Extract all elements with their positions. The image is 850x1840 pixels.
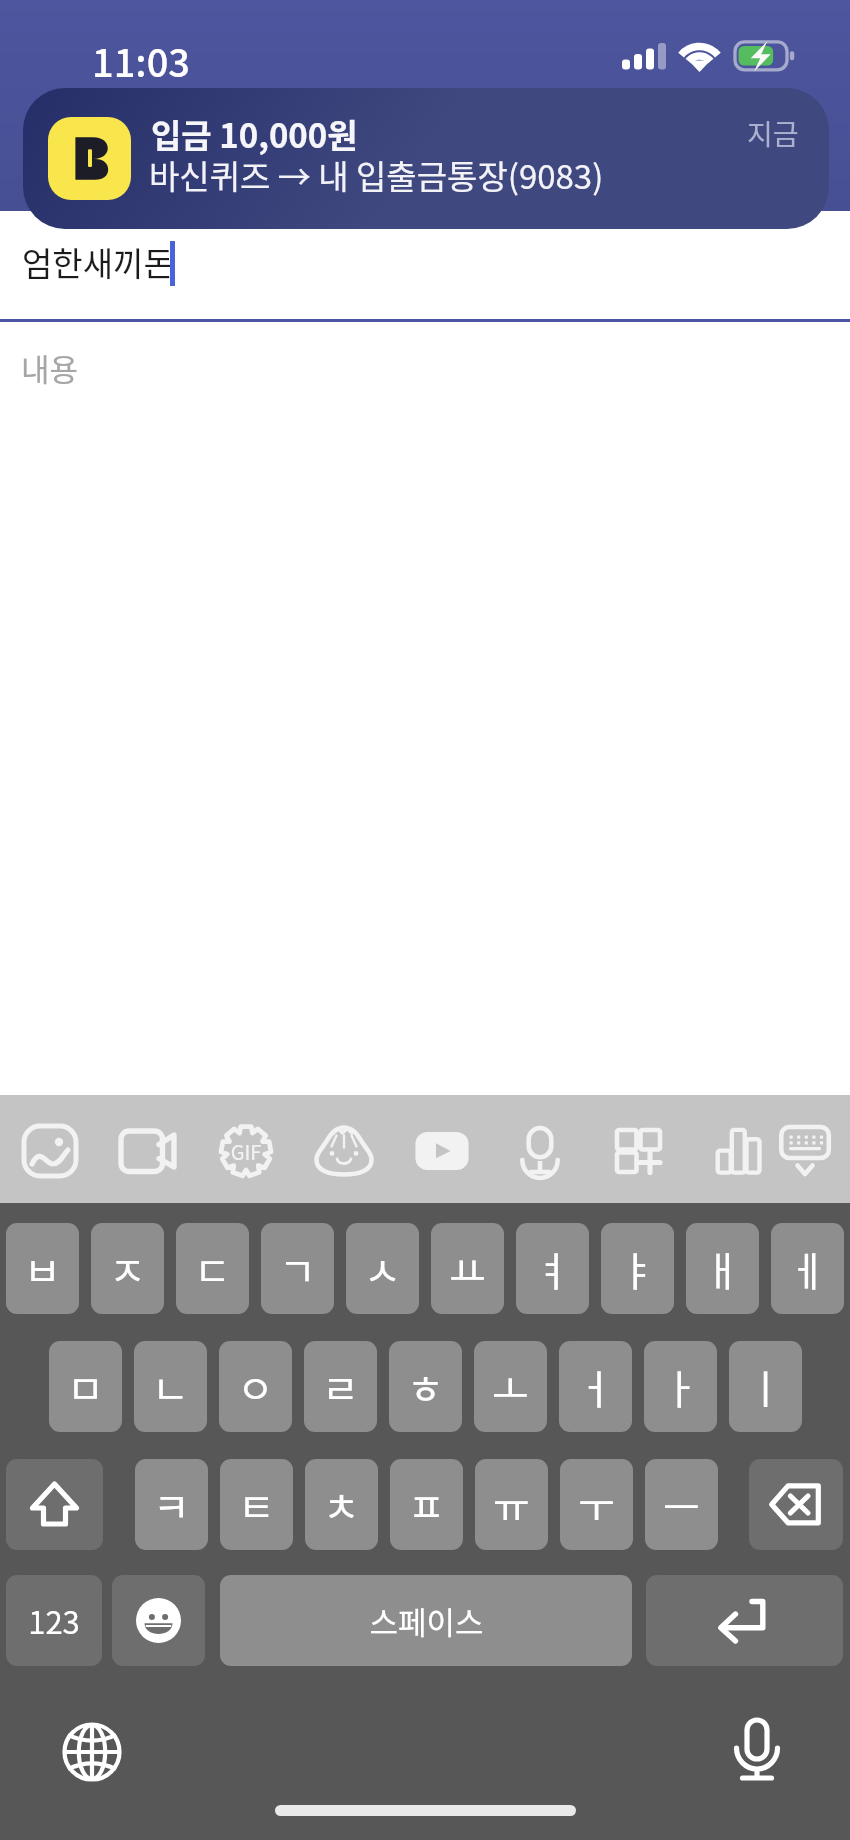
button[interactable]: 입금 10,000원 <box>23 88 829 229</box>
staticText: 지금 <box>747 113 799 154</box>
staticText: ㅑ <box>619 1240 656 1298</box>
button[interactable]: ㅍ <box>390 1459 463 1550</box>
staticText: ㅋ <box>153 1476 190 1534</box>
button[interactable]: Emoji <box>112 1575 205 1666</box>
staticText: GIF <box>221 1137 271 1166</box>
button[interactable]: Return <box>646 1575 843 1666</box>
staticText: 스페이스 <box>369 1598 484 1643</box>
staticText: ㅈ <box>109 1240 146 1298</box>
button[interactable]: Photos <box>8 1109 92 1193</box>
staticText: ㅌ <box>238 1476 275 1534</box>
button[interactable]: Shift <box>6 1459 103 1550</box>
button[interactable]: Apps <box>594 1109 678 1193</box>
button[interactable]: ㅜ <box>560 1459 633 1550</box>
button[interactable]: ㅠ <box>475 1459 548 1550</box>
staticText: 123 <box>28 1598 80 1643</box>
button[interactable]: ㅔ <box>771 1223 844 1314</box>
staticText: ㅛ <box>449 1240 486 1298</box>
button[interactable]: ㅈ <box>91 1223 164 1314</box>
button[interactable]: Voice <box>498 1108 582 1192</box>
button[interactable]: ㅌ <box>220 1459 293 1550</box>
button[interactable]: Hide keyboard <box>763 1100 847 1184</box>
staticText: 11:03 <box>92 33 190 88</box>
staticText: ㅜ <box>578 1476 615 1534</box>
button[interactable]: Poll <box>694 1109 778 1193</box>
button[interactable]: ㅓ <box>559 1341 632 1432</box>
staticText: 입금 10,000원 <box>151 110 358 158</box>
button[interactable]: ㄷ <box>176 1223 249 1314</box>
button[interactable]: ㄴ <box>134 1341 207 1432</box>
staticText: ㅍ <box>408 1476 445 1534</box>
staticText: ㅡ <box>663 1476 700 1534</box>
button[interactable]: ㅇ <box>219 1341 292 1432</box>
staticText: ㅓ <box>577 1358 614 1416</box>
button[interactable]: 엄한새끼돈 <box>22 238 174 286</box>
button[interactable]: ㅑ <box>601 1223 674 1314</box>
staticText: ㅠ <box>493 1476 530 1534</box>
button[interactable]: ㅅ <box>346 1223 419 1314</box>
staticText: ㅂ <box>24 1240 61 1298</box>
button[interactable]: GIF <box>204 1109 288 1193</box>
button[interactable]: ㅗ <box>474 1341 547 1432</box>
button[interactable]: ㄱ <box>261 1223 334 1314</box>
staticText: ㄹ <box>322 1358 359 1416</box>
button[interactable]: Change keyboard <box>57 1717 127 1787</box>
button[interactable]: 123 <box>6 1575 102 1666</box>
button[interactable]: 내용 <box>21 345 79 390</box>
button[interactable]: ㄹ <box>304 1341 377 1432</box>
staticText: ㅐ <box>704 1240 741 1298</box>
staticText: ㅕ <box>534 1240 571 1298</box>
button[interactable]: ㅁ <box>49 1341 122 1432</box>
staticText: ㄴ <box>152 1358 189 1416</box>
button[interactable]: ㅡ <box>645 1459 718 1550</box>
staticText: ㄱ <box>279 1240 316 1298</box>
button[interactable]: ㅕ <box>516 1223 589 1314</box>
button[interactable]: ㅂ <box>6 1223 79 1314</box>
staticText: ㅣ <box>747 1358 784 1416</box>
button[interactable]: ㅐ <box>686 1223 759 1314</box>
button[interactable]: Dictation <box>722 1715 792 1785</box>
staticText: ㅔ <box>789 1240 826 1298</box>
staticText: ㅁ <box>67 1358 104 1416</box>
button[interactable]: YouTube <box>400 1109 484 1193</box>
staticText: ㅊ <box>323 1476 360 1534</box>
button[interactable]: ㅏ <box>644 1341 717 1432</box>
button[interactable]: ㅣ <box>729 1341 802 1432</box>
staticText: ㅎ <box>407 1358 444 1416</box>
staticText: ㅅ <box>364 1240 401 1298</box>
button[interactable]: Stickers <box>302 1109 386 1193</box>
staticText: ㅇ <box>237 1358 274 1416</box>
button[interactable]: ㅎ <box>389 1341 462 1432</box>
button[interactable]: Video <box>105 1109 189 1193</box>
staticText: ㅗ <box>492 1358 529 1416</box>
staticText: ㄷ <box>194 1240 231 1298</box>
button[interactable]: 스페이스 <box>220 1575 632 1666</box>
button[interactable]: ㅊ <box>305 1459 378 1550</box>
staticText: 바신퀴즈 → 내 입출금통장(9083) <box>149 151 604 199</box>
button[interactable]: ㅛ <box>431 1223 504 1314</box>
button[interactable]: ㅋ <box>135 1459 208 1550</box>
staticText: ㅏ <box>662 1358 699 1416</box>
button[interactable]: Backspace <box>749 1459 843 1550</box>
